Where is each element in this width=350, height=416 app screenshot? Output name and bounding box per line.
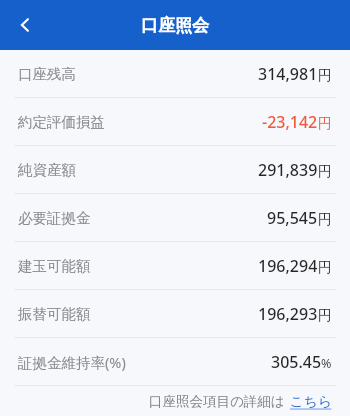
- staticText: 305.45%: [271, 351, 332, 373]
- button[interactable]: Back: [6, 6, 44, 44]
- staticText: 314,981 円: [258, 63, 332, 85]
- button[interactable]: 約定評価損益: [0, 98, 350, 145]
- staticText: 約定評価損益: [18, 113, 105, 131]
- staticText: -23,142 円: [262, 111, 332, 133]
- staticText: 口座照会項目の詳細は: [149, 393, 285, 410]
- staticText: 振替可能額: [18, 305, 91, 323]
- staticText: 196,294 円: [258, 255, 332, 277]
- button[interactable]: 証拠金維持率(%): [0, 338, 350, 385]
- button[interactable]: 建玉可能額: [0, 242, 350, 289]
- button[interactable]: 必要証拠金: [0, 194, 350, 241]
- staticText: 必要証拠金: [18, 209, 91, 227]
- staticText: こちら: [290, 393, 332, 410]
- staticText: 口座残高: [18, 65, 76, 83]
- staticText: 291,839 円: [258, 159, 332, 181]
- button[interactable]: 純資産額: [0, 146, 350, 193]
- button[interactable]: 口座残高: [0, 50, 350, 97]
- button[interactable]: 振替可能額: [0, 290, 350, 337]
- staticText: 証拠金維持率(%): [18, 352, 126, 372]
- staticText: 196,293 円: [258, 303, 332, 325]
- staticText: 口座照会: [141, 15, 209, 36]
- staticText: 建玉可能額: [18, 257, 91, 275]
- staticText: 純資産額: [18, 161, 76, 179]
- button[interactable]: こちら: [290, 393, 332, 410]
- staticText: 95,545 円: [267, 207, 332, 229]
